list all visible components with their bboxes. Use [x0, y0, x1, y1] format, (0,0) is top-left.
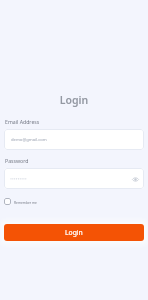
- staticText: Email Address: [5, 118, 40, 125]
- staticText: Remember me: [14, 200, 37, 204]
- staticText: Login: [0, 93, 148, 107]
- staticText: Login: [65, 228, 83, 237]
- button[interactable]: Show password: [4, 168, 144, 189]
- button[interactable]: demo@gmail.com: [4, 129, 144, 150]
- staticText: demo@gmail.com: [11, 137, 47, 143]
- button[interactable]: Show password: [130, 174, 140, 184]
- staticText: Password: [5, 157, 29, 164]
- button[interactable]: Remember me: [4, 198, 37, 205]
- button[interactable]: Login: [4, 224, 144, 241]
